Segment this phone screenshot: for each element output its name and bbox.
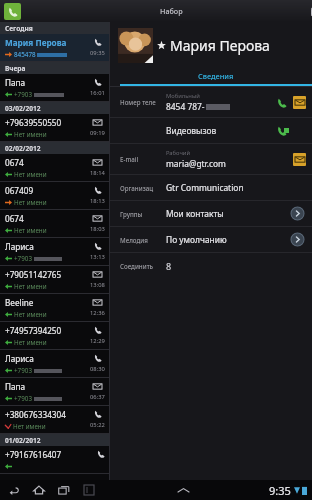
staticText: Нет имени — [14, 282, 47, 291]
button[interactable]: Мелодия зв — [110, 227, 312, 253]
staticText: maria@gtr.com — [166, 158, 226, 169]
staticText: 09:19 — [90, 129, 105, 137]
staticText: Нет имени — [14, 338, 47, 347]
staticText: 13:13 — [90, 253, 105, 261]
button[interactable]: Главный экран — [30, 481, 48, 499]
staticText: 18:03 — [90, 225, 105, 233]
staticText: 0674 — [5, 157, 24, 168]
staticText: +79167616407 — [5, 449, 62, 460]
staticText: Папа — [5, 381, 26, 392]
button[interactable]: SMS — [293, 96, 306, 109]
button[interactable]: +79051142765 — [0, 266, 110, 294]
staticText: 12:36 — [90, 309, 105, 317]
button[interactable]: +380676334304 — [0, 406, 110, 434]
button[interactable]: Написать письмо — [293, 153, 306, 166]
staticText: 03/02/2012 — [5, 104, 41, 113]
staticText: Мария Перова — [5, 37, 67, 48]
button[interactable]: 067409 — [0, 182, 110, 210]
staticText: 067409 — [5, 185, 34, 196]
button[interactable]: +79167616407 — [0, 446, 110, 474]
staticText: 08:30 — [90, 365, 105, 373]
staticText: Gtr Communication — [166, 182, 244, 193]
staticText: 0674 — [5, 213, 24, 224]
button[interactable]: Скриншот — [80, 481, 98, 499]
staticText: 8 — [166, 260, 172, 272]
button[interactable]: 0674 — [0, 210, 110, 238]
staticText: 8454 787- — [166, 101, 205, 112]
button[interactable]: Набор — [31, 0, 312, 22]
button[interactable]: Папа — [0, 74, 110, 102]
staticText: 09:35 — [90, 49, 105, 57]
staticText: По умолчанию — [166, 234, 227, 245]
staticText: 12:29 — [90, 337, 105, 345]
staticText: Соединить — [120, 262, 154, 270]
staticText: Нет имени — [14, 130, 47, 139]
staticText: 06:37 — [90, 393, 105, 401]
staticText: Лариса — [5, 353, 34, 364]
staticText: Организаци — [120, 184, 156, 192]
staticText: +7903 — [14, 366, 33, 375]
button[interactable]: Номер теле — [110, 87, 312, 118]
staticText: Набор — [160, 6, 183, 16]
staticText: Номер теле — [120, 98, 156, 106]
staticText: Рабочий — [166, 149, 191, 157]
button[interactable]: Недавние — [55, 481, 73, 499]
staticText: Группы — [120, 210, 143, 218]
button[interactable]: 0674 — [0, 154, 110, 182]
staticText: 845478 — [14, 50, 36, 59]
staticText: Нет имени — [14, 198, 47, 207]
button[interactable]: Лариса — [0, 350, 110, 378]
staticText: +7903 — [14, 394, 33, 403]
staticText: 13:08 — [90, 281, 105, 289]
button[interactable]: Группы — [110, 201, 312, 227]
button[interactable]: Организаци — [110, 175, 312, 201]
staticText: +79639550550 — [5, 117, 62, 128]
staticText: 9:35 — [269, 483, 291, 498]
staticText: Beeline — [5, 297, 34, 308]
staticText: +79051142765 — [5, 269, 62, 280]
staticText: Нет имени — [14, 170, 47, 179]
button[interactable]: Видеовызов — [274, 123, 289, 138]
staticText: Папа — [5, 77, 26, 88]
staticText: +7903 — [14, 254, 33, 263]
button[interactable]: Видеовызов — [110, 118, 312, 144]
button[interactable]: Показать уведомления — [174, 481, 192, 499]
staticText: 18:13 — [90, 197, 105, 205]
staticText: Нет имени — [13, 422, 46, 431]
staticText: +74957394250 — [5, 325, 62, 336]
button[interactable]: Лариса — [0, 238, 110, 266]
staticText: Нет имени — [14, 310, 47, 319]
button[interactable]: Позвонить — [274, 95, 289, 110]
button[interactable]: Мария Перова — [0, 34, 110, 62]
button[interactable]: Фото — [118, 28, 153, 63]
staticText: Сегодня — [5, 24, 33, 33]
button[interactable]: Назад — [5, 481, 23, 499]
staticText: Лариса — [5, 241, 34, 252]
button[interactable]: +74957394250 — [0, 322, 110, 350]
staticText: E-mail — [120, 155, 139, 163]
staticText: 01/02/2012 — [5, 436, 41, 445]
staticText: 18:14 — [90, 169, 105, 177]
staticText: +7903 — [14, 90, 33, 99]
staticText: Нет имени — [14, 226, 47, 235]
staticText: Мелодия зв — [120, 236, 156, 244]
staticText: Мои контакты — [166, 208, 224, 219]
button[interactable]: Папа — [0, 378, 110, 406]
staticText: Вчера — [5, 64, 26, 73]
staticText: Видеовызов — [166, 125, 217, 136]
staticText: 02/02/2012 — [5, 144, 41, 153]
button[interactable]: +79639550550 — [0, 114, 110, 142]
staticText: +380676334304 — [5, 409, 66, 420]
staticText: Мария Перова — [170, 36, 270, 55]
button[interactable]: Beeline — [0, 294, 110, 322]
staticText: Мобильный — [166, 92, 200, 100]
staticText: 05:22 — [90, 421, 105, 429]
button[interactable]: Телефон — [4, 3, 21, 20]
staticText: 16:01 — [90, 89, 105, 97]
button[interactable]: Сведения — [120, 69, 312, 86]
button[interactable]: E-mail — [110, 144, 312, 175]
staticText: Сведения — [198, 71, 234, 81]
